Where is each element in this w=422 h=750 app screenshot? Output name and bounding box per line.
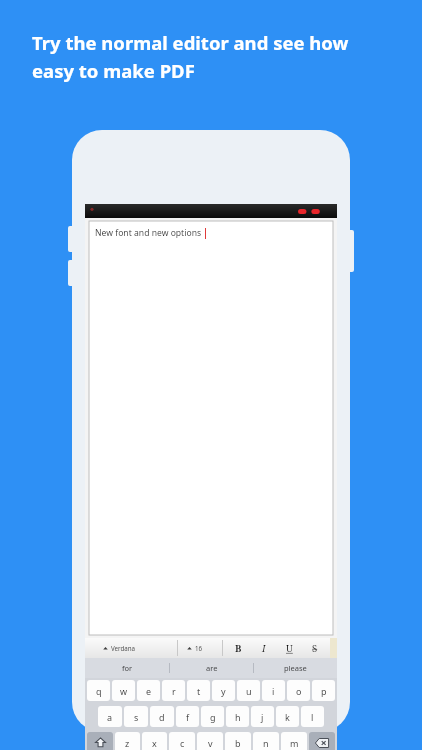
button[interactable]: w [112, 680, 135, 701]
staticText: d [159, 711, 165, 723]
button[interactable]: v [197, 732, 223, 750]
button[interactable]: for [85, 658, 169, 678]
button[interactable]: 16 [178, 638, 222, 658]
button[interactable]: Shift [87, 732, 113, 750]
staticText: l [311, 711, 314, 723]
staticText: u [246, 685, 252, 697]
button[interactable]: a [98, 706, 122, 727]
button[interactable]: f [176, 706, 199, 727]
button[interactable]: please [254, 658, 337, 678]
staticText: g [210, 711, 216, 723]
staticText: w [120, 685, 128, 697]
button[interactable]: b [225, 732, 251, 750]
staticText: k [285, 711, 290, 723]
staticText: m [290, 737, 299, 749]
staticText: n [263, 737, 269, 749]
button[interactable]: x [142, 732, 167, 750]
button[interactable]: m [281, 732, 307, 750]
button[interactable]: S [305, 639, 325, 657]
staticText: t [197, 685, 201, 697]
button[interactable]: are [170, 658, 253, 678]
staticText: p [321, 685, 327, 697]
staticText: h [235, 711, 241, 723]
staticText: z [125, 737, 130, 749]
button[interactable]: k [276, 706, 299, 727]
button[interactable]: i [262, 680, 285, 701]
button[interactable]: c [169, 732, 195, 750]
button[interactable]: B [228, 639, 248, 657]
staticText: S [312, 642, 318, 655]
staticText: j [261, 711, 264, 723]
staticText: e [146, 685, 152, 697]
button[interactable]: Backspace [309, 732, 335, 750]
button[interactable]: u [237, 680, 260, 701]
button[interactable]: Verdana [85, 638, 177, 658]
staticText: U [286, 642, 293, 655]
staticText: I [262, 642, 266, 655]
button[interactable]: t [187, 680, 210, 701]
staticText: please [284, 663, 307, 673]
staticText: are [206, 663, 218, 673]
staticText: a [107, 711, 113, 723]
button[interactable]: y [212, 680, 235, 701]
button[interactable]: q [87, 680, 110, 701]
staticText: New font and new options [95, 227, 202, 239]
button[interactable]: z [115, 732, 140, 750]
staticText: f [186, 711, 190, 723]
button[interactable]: p [312, 680, 335, 701]
staticText: v [208, 737, 213, 749]
staticText: s [134, 711, 139, 723]
staticText: r [172, 685, 176, 697]
button[interactable]: I [254, 639, 274, 657]
button[interactable]: r [162, 680, 185, 701]
staticText: c [180, 737, 185, 749]
staticText: o [296, 685, 302, 697]
button[interactable]: l [301, 706, 324, 727]
staticText: x [152, 737, 157, 749]
button[interactable]: U [279, 639, 299, 657]
staticText: i [272, 685, 275, 697]
staticText: 16 [195, 644, 203, 652]
button[interactable]: o [287, 680, 310, 701]
staticText: easy to make PDF [32, 58, 195, 83]
button[interactable]: j [251, 706, 274, 727]
button[interactable]: n [253, 732, 279, 750]
staticText: for [122, 663, 133, 673]
staticText: q [96, 685, 102, 697]
button[interactable]: e [137, 680, 160, 701]
button[interactable]: g [201, 706, 224, 727]
staticText: B [235, 642, 242, 655]
button[interactable]: d [150, 706, 174, 727]
staticText: b [235, 737, 241, 749]
staticText: y [221, 685, 226, 697]
staticText: Try the normal editor and see how [32, 30, 349, 55]
button[interactable]: h [226, 706, 249, 727]
staticText: Verdana [111, 644, 136, 652]
button[interactable]: s [124, 706, 148, 727]
